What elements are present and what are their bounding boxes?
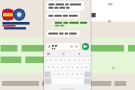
button[interactable]: Send bbox=[82, 43, 89, 50]
button[interactable]: Logo bbox=[1, 9, 31, 29]
button[interactable] bbox=[46, 43, 80, 50]
